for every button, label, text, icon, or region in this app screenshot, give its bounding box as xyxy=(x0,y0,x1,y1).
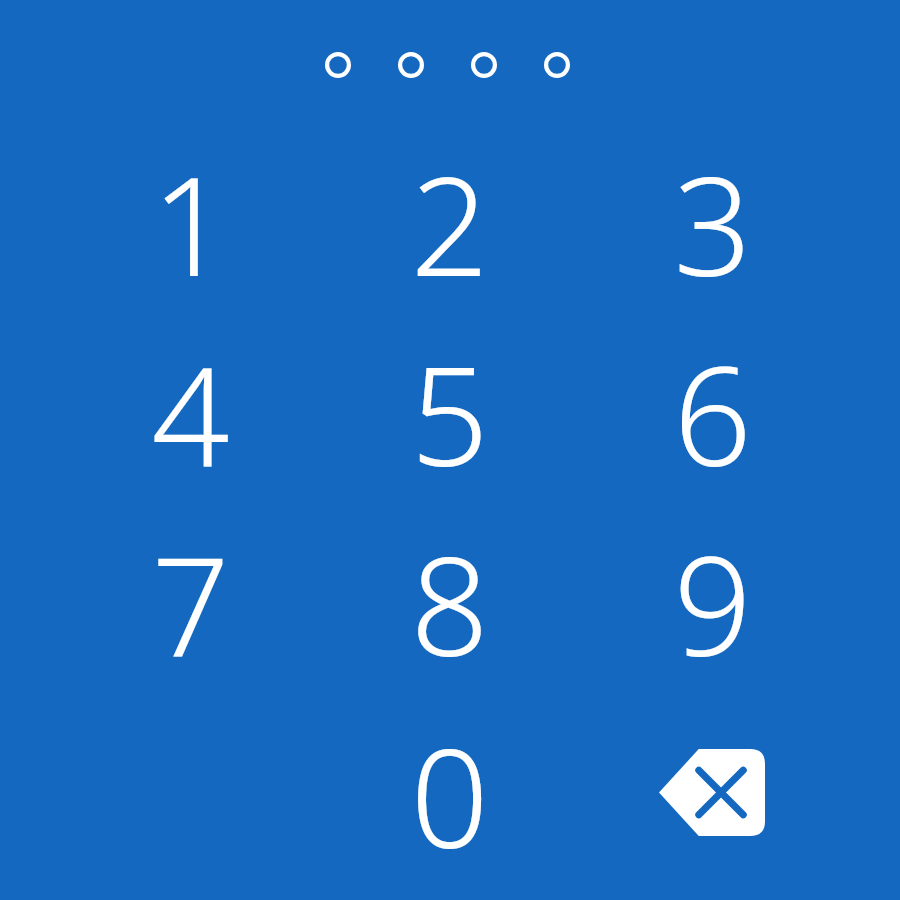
button[interactable]: 5 xyxy=(374,320,524,500)
staticText: 8 xyxy=(410,510,489,690)
button[interactable]: 7 xyxy=(115,510,265,690)
button[interactable]: 4 xyxy=(115,320,265,500)
button[interactable]: Backspace xyxy=(637,702,787,882)
staticText: 5 xyxy=(410,320,489,500)
staticText: 0 xyxy=(410,702,489,882)
staticText: 3 xyxy=(673,130,752,310)
button[interactable]: 2 xyxy=(374,130,524,310)
staticText: 4 xyxy=(151,320,230,500)
staticText: 2 xyxy=(410,130,489,310)
button[interactable]: 0 xyxy=(374,702,524,882)
button[interactable]: 8 xyxy=(374,510,524,690)
button[interactable]: 6 xyxy=(637,320,787,500)
staticText: 9 xyxy=(673,510,752,690)
button[interactable]: 1 xyxy=(115,130,265,310)
button[interactable]: 3 xyxy=(637,130,787,310)
staticText: 1 xyxy=(151,130,230,310)
button[interactable]: 9 xyxy=(637,510,787,690)
staticText: 6 xyxy=(673,320,752,500)
staticText: 7 xyxy=(151,510,230,690)
